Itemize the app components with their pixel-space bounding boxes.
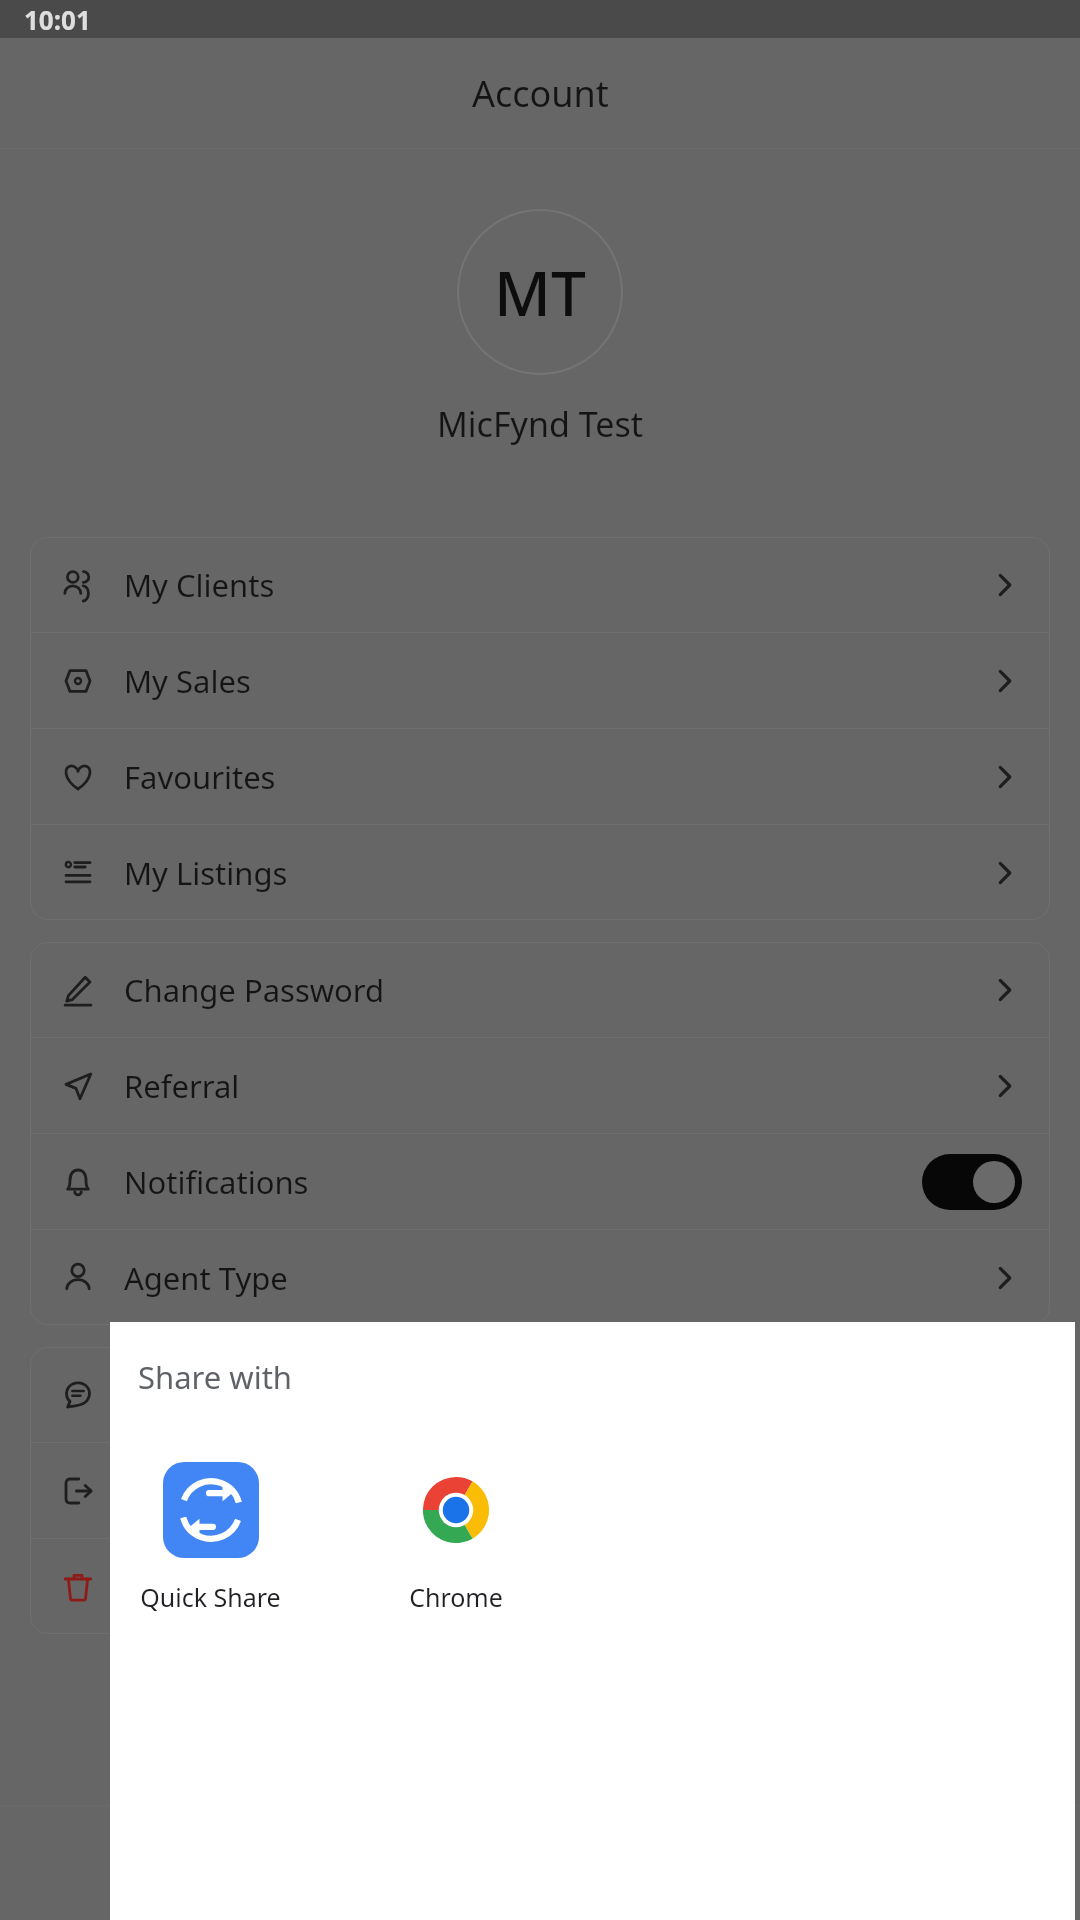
button[interactable]: Favourites (30, 729, 1050, 824)
staticText: Delete Account (124, 1566, 345, 1608)
staticText: Change Password (124, 969, 385, 1011)
button[interactable]: Home (56, 1806, 256, 1920)
staticText: 10:01 (24, 2, 91, 37)
button[interactable]: Referral (30, 1038, 1050, 1133)
staticText: MT (494, 250, 586, 334)
staticText: Feedback (124, 1374, 263, 1416)
button[interactable]: Change Password (30, 942, 1050, 1037)
button[interactable]: My Listings (30, 825, 1050, 920)
staticText: Account (472, 69, 609, 118)
button[interactable]: Chrome (363, 1456, 548, 1620)
staticText: My Sales (124, 660, 251, 702)
button[interactable]: Quick Share (118, 1456, 303, 1620)
button[interactable]: Feedback (30, 1347, 1050, 1442)
staticText: Logout (124, 1470, 228, 1512)
button[interactable]: Notifications (30, 1134, 1050, 1229)
staticText: Share with (138, 1356, 293, 1398)
staticText: My Clients (124, 564, 275, 606)
button[interactable]: Delete Account (30, 1539, 1050, 1634)
staticText: Agent Type (124, 1257, 288, 1299)
button[interactable]: MT (457, 209, 623, 375)
staticText: MicFynd Test (437, 401, 643, 447)
staticText: Referral (124, 1065, 240, 1107)
staticText: Quick Share (140, 1580, 281, 1614)
staticText: Chrome (409, 1580, 503, 1614)
button[interactable]: My Clients (30, 537, 1050, 632)
staticText: My Listings (124, 852, 288, 894)
button[interactable]: My Sales (30, 633, 1050, 728)
button[interactable]: Logout (30, 1443, 1050, 1538)
button[interactable]: Agent Type (30, 1230, 1050, 1325)
staticText: Notifications (124, 1161, 309, 1203)
staticText: Favourites (124, 756, 276, 798)
